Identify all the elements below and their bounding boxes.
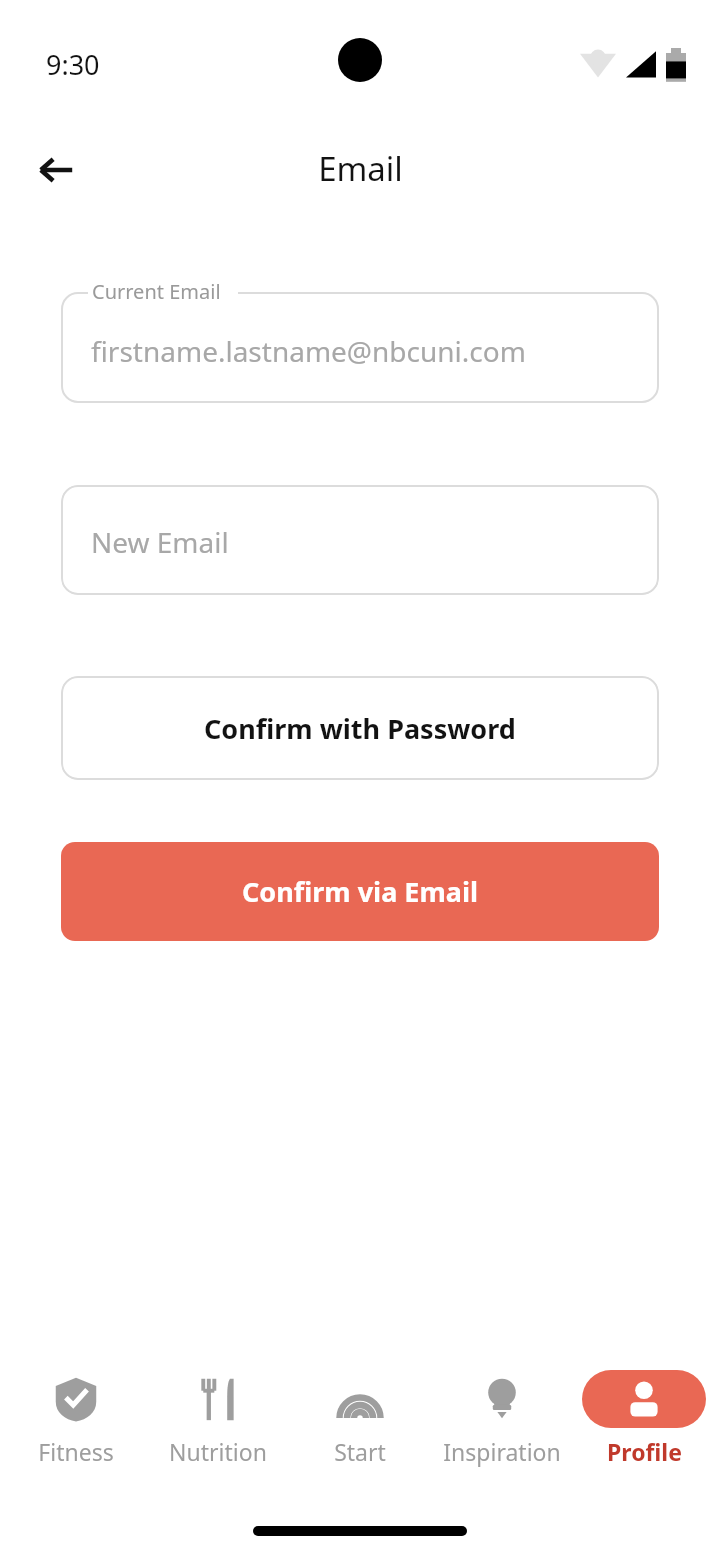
staticText: Profile [607,1436,682,1467]
staticText: Inspiration [443,1436,561,1467]
button[interactable]: Nutrition [152,1370,284,1467]
staticText: Email [318,146,403,191]
staticText: 9:30 [46,46,100,83]
staticText: Confirm via Email [242,873,479,910]
button[interactable]: firstname.lastname@nbcuni.com [61,292,659,403]
button[interactable]: Back [22,136,90,204]
staticText: Start [334,1436,386,1467]
button[interactable]: Confirm via Email [61,842,659,941]
button[interactable]: Start [294,1370,426,1467]
staticText: Fitness [38,1436,114,1467]
button[interactable]: Inspiration [436,1370,568,1467]
button[interactable]: Fitness [10,1370,142,1467]
button[interactable]: Profile [578,1370,710,1467]
staticText: Current Email [92,278,221,305]
staticText: firstname.lastname@nbcuni.com [91,332,526,370]
button[interactable]: Confirm with Password [61,676,659,780]
staticText: Nutrition [169,1436,267,1467]
button[interactable]: New Email [61,485,659,595]
staticText: Confirm with Password [204,710,516,747]
staticText: New Email [91,523,229,561]
